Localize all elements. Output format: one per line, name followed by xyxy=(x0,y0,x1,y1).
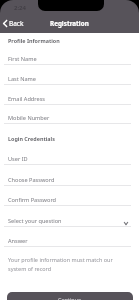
staticText: Email Address xyxy=(8,95,45,103)
button[interactable]: Last Name xyxy=(0,71,139,85)
staticText: Last Name xyxy=(8,75,36,83)
staticText: User ID xyxy=(8,155,28,163)
staticText: Mobile Number xyxy=(8,114,50,122)
staticText: Profile Information xyxy=(8,37,60,44)
button[interactable]: Mobile Number xyxy=(0,110,139,124)
button[interactable]: First Name xyxy=(0,51,139,65)
button[interactable]: User ID xyxy=(0,151,139,165)
staticText: Confirm Password xyxy=(8,196,57,204)
button[interactable]: Answer xyxy=(0,233,139,247)
button[interactable]: Back xyxy=(1,18,26,29)
staticText: 2:24 xyxy=(14,4,26,12)
staticText: Continue xyxy=(58,296,82,300)
button[interactable]: Confirm Password xyxy=(0,192,139,206)
button[interactable]: Choose Password xyxy=(0,172,139,186)
staticText: Login Credentials xyxy=(8,135,55,142)
staticText: Select your question xyxy=(8,217,62,225)
staticText: Your profile information must match our … xyxy=(8,256,122,272)
staticText: Answer xyxy=(8,237,28,245)
staticText: Registration xyxy=(50,19,89,28)
button[interactable]: Email Address xyxy=(0,91,139,105)
button[interactable]: Select your question xyxy=(0,213,139,227)
staticText: Back xyxy=(9,19,24,28)
button[interactable]: Continue xyxy=(7,292,133,300)
staticText: First Name xyxy=(8,55,37,63)
staticText: Choose Password xyxy=(8,176,55,184)
